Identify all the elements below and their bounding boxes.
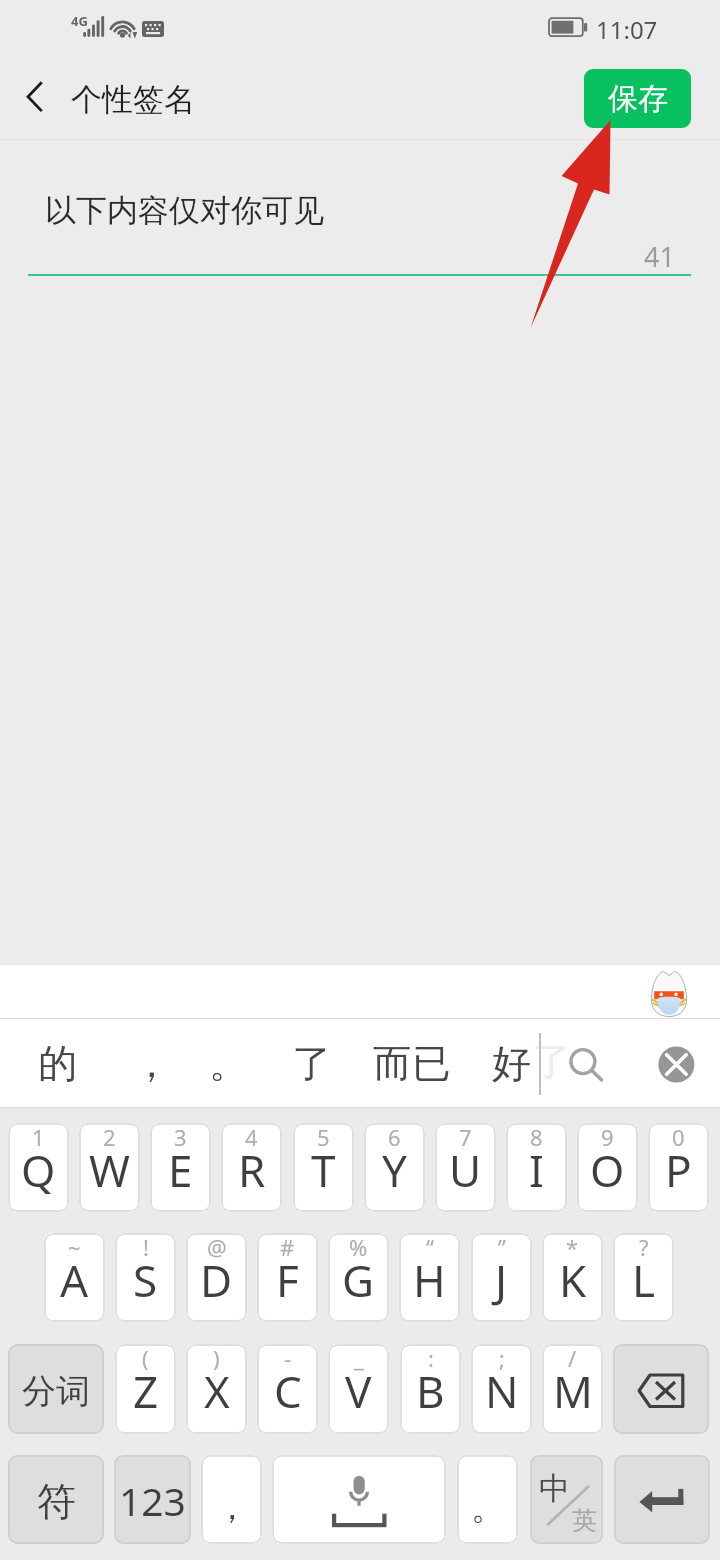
staticText: 。 bbox=[471, 1486, 505, 1529]
button[interactable]: * bbox=[542, 1233, 603, 1322]
staticText: 6 bbox=[388, 1123, 401, 1152]
button[interactable]: 4 bbox=[221, 1123, 282, 1212]
button[interactable]: Enter bbox=[614, 1455, 710, 1544]
staticText: O bbox=[590, 1140, 625, 1200]
staticText: ， bbox=[132, 1039, 171, 1088]
button[interactable]: @ bbox=[186, 1233, 247, 1322]
staticText: 9 bbox=[601, 1123, 614, 1152]
staticText: 符 bbox=[37, 1477, 76, 1526]
button[interactable]: 分词 bbox=[8, 1344, 104, 1434]
staticText: % bbox=[349, 1233, 368, 1262]
button[interactable]: 7 bbox=[435, 1123, 496, 1212]
staticText: ( bbox=[142, 1344, 149, 1373]
staticText: _ bbox=[354, 1344, 364, 1373]
button[interactable]: % bbox=[328, 1233, 389, 1322]
button[interactable]: 0 bbox=[648, 1123, 709, 1212]
staticText: ) bbox=[213, 1344, 220, 1373]
staticText: E bbox=[168, 1140, 193, 1200]
button[interactable]: ， bbox=[201, 1455, 262, 1544]
button[interactable]: 。 bbox=[457, 1455, 518, 1544]
button[interactable]: Space bbox=[272, 1455, 446, 1544]
staticText: 了 bbox=[292, 1039, 331, 1088]
staticText: L bbox=[632, 1250, 656, 1310]
staticText: 个性签名 bbox=[71, 80, 195, 119]
staticText: ” bbox=[498, 1233, 506, 1262]
button[interactable]: ! bbox=[115, 1233, 176, 1322]
staticText: 123 bbox=[119, 1474, 186, 1527]
staticText: “ bbox=[426, 1233, 434, 1262]
staticText: W bbox=[89, 1140, 130, 1200]
button[interactable]: ; bbox=[471, 1344, 532, 1434]
staticText: 。 bbox=[209, 1039, 248, 1088]
button[interactable]: Back bbox=[0, 56, 71, 140]
staticText: P bbox=[665, 1140, 692, 1200]
button[interactable]: 符 bbox=[8, 1455, 104, 1544]
staticText: : bbox=[428, 1344, 434, 1373]
button[interactable]: 保存 bbox=[584, 69, 691, 128]
staticText: Z bbox=[133, 1361, 159, 1421]
button[interactable]: ， bbox=[117, 1025, 185, 1101]
staticText: U bbox=[449, 1140, 482, 1200]
button[interactable]: Backspace bbox=[613, 1344, 709, 1434]
button[interactable]: “ bbox=[399, 1233, 460, 1322]
button[interactable]: 而已 bbox=[358, 1025, 466, 1101]
staticText: ~ bbox=[68, 1233, 81, 1262]
button[interactable]: - bbox=[257, 1344, 318, 1434]
button[interactable]: 3 bbox=[150, 1123, 211, 1212]
staticText: G bbox=[342, 1250, 375, 1310]
staticText: F bbox=[276, 1250, 299, 1310]
staticText: 3 bbox=[174, 1123, 187, 1152]
button[interactable]: ? bbox=[613, 1233, 674, 1322]
staticText: H bbox=[413, 1250, 446, 1310]
staticText: 8 bbox=[530, 1123, 543, 1152]
staticText: 41 bbox=[644, 238, 675, 275]
button[interactable]: 9 bbox=[577, 1123, 638, 1212]
staticText: 1 bbox=[32, 1123, 45, 1152]
staticText: 7 bbox=[459, 1123, 472, 1152]
staticText: 中 bbox=[539, 1469, 570, 1508]
staticText: 保存 bbox=[608, 80, 668, 118]
staticText: K bbox=[559, 1250, 587, 1310]
staticText: N bbox=[485, 1361, 519, 1421]
button[interactable]: 2 bbox=[79, 1123, 140, 1212]
staticText: Q bbox=[21, 1140, 56, 1200]
staticText: ， bbox=[215, 1486, 249, 1529]
button[interactable]: 5 bbox=[293, 1123, 354, 1212]
button[interactable]: 6 bbox=[364, 1123, 425, 1212]
staticText: D bbox=[200, 1250, 233, 1310]
button[interactable]: Search bbox=[555, 1044, 611, 1094]
button[interactable]: : bbox=[400, 1344, 461, 1434]
button[interactable]: 。 bbox=[194, 1025, 262, 1101]
button[interactable]: 了 bbox=[277, 1025, 345, 1101]
staticText: T bbox=[311, 1140, 336, 1200]
button[interactable]: 好 bbox=[477, 1025, 545, 1101]
button[interactable]: 8 bbox=[506, 1123, 567, 1212]
button[interactable]: ” bbox=[471, 1233, 532, 1322]
staticText: - bbox=[284, 1344, 292, 1373]
button[interactable]: 的 bbox=[23, 1025, 91, 1101]
button[interactable]: Chinese English bbox=[530, 1455, 603, 1544]
button[interactable]: Assistant bbox=[645, 967, 693, 1019]
staticText: ; bbox=[499, 1344, 505, 1373]
staticText: ! bbox=[143, 1233, 149, 1262]
staticText: 了 bbox=[532, 1037, 571, 1086]
button[interactable]: # bbox=[257, 1233, 318, 1322]
button[interactable]: ~ bbox=[44, 1233, 105, 1322]
staticText: V bbox=[345, 1361, 372, 1421]
staticText: / bbox=[568, 1344, 577, 1373]
staticText: B bbox=[416, 1361, 445, 1421]
staticText: ? bbox=[639, 1233, 649, 1262]
button[interactable]: / bbox=[542, 1344, 603, 1434]
staticText: C bbox=[274, 1361, 302, 1421]
staticText: 2 bbox=[103, 1123, 116, 1152]
staticText: M bbox=[553, 1361, 593, 1421]
button[interactable]: ) bbox=[186, 1344, 247, 1434]
staticText: 好 bbox=[492, 1039, 531, 1088]
button[interactable]: Close keyboard bbox=[652, 1047, 700, 1085]
button[interactable]: _ bbox=[328, 1344, 389, 1434]
button[interactable]: 1 bbox=[8, 1123, 69, 1212]
staticText: J bbox=[495, 1250, 508, 1310]
staticText: X bbox=[204, 1361, 230, 1421]
button[interactable]: ( bbox=[115, 1344, 176, 1434]
button[interactable]: 123 bbox=[114, 1455, 191, 1544]
